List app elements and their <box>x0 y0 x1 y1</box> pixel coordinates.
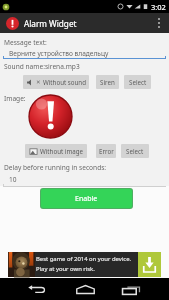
button[interactable]: More options <box>153 17 165 29</box>
button[interactable]: Recents <box>119 281 143 298</box>
button[interactable]: Download <box>138 252 161 277</box>
button[interactable]: Home <box>73 281 97 298</box>
staticText: Image: <box>4 94 26 103</box>
staticText: Select <box>126 147 144 155</box>
staticText: Select <box>129 78 147 86</box>
button[interactable]: ✕ <box>23 75 89 89</box>
staticText: Message text: <box>4 38 47 47</box>
staticText: 10 <box>9 175 17 184</box>
button[interactable]: Enable <box>41 189 132 208</box>
button[interactable]: Error <box>96 144 116 158</box>
staticText: Enable <box>75 194 98 204</box>
staticText: Without image <box>40 147 83 155</box>
staticText: 3:02 <box>151 2 166 12</box>
button[interactable]: Back <box>25 281 49 298</box>
staticText: Delay before running in seconds: <box>4 163 107 172</box>
staticText: Error <box>99 147 114 155</box>
staticText: ✕ <box>36 79 41 85</box>
button[interactable]: Select <box>121 144 149 158</box>
button[interactable]: Select <box>124 75 151 89</box>
staticText: Siren <box>100 78 115 86</box>
staticText: Without sound <box>43 78 86 86</box>
button[interactable]: Without image <box>25 144 87 158</box>
staticText: Верните устройство владельцу <box>9 49 109 58</box>
staticText: Alarm Widget <box>24 18 77 29</box>
staticText: Best game of 2014 on your device. <box>36 255 132 263</box>
staticText: Sound name:sirena.mp3 <box>4 62 80 71</box>
button[interactable]: Siren <box>96 75 119 89</box>
staticText: Play at your own risk. <box>36 265 95 273</box>
